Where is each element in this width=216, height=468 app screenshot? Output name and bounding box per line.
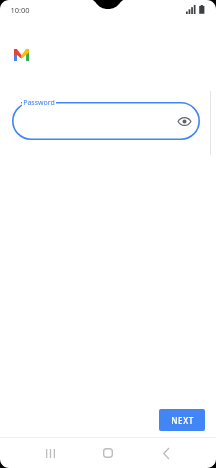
button[interactable]: Show password <box>174 111 194 131</box>
button[interactable]: NEXT <box>159 409 205 431</box>
staticText: NEXT <box>171 415 194 426</box>
staticText: Password <box>23 98 55 108</box>
staticText: 10:00 <box>10 5 30 15</box>
button[interactable]: Back <box>152 439 180 467</box>
button[interactable]: Password <box>12 102 200 140</box>
button[interactable]: Home <box>94 439 122 467</box>
button[interactable]: Recents <box>36 439 64 467</box>
